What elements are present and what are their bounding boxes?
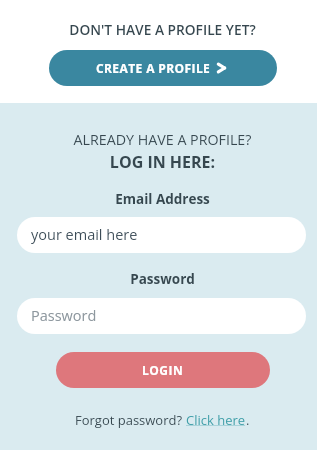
staticText: . [246, 411, 250, 429]
staticText: ALREADY HAVE A PROFILE? [4, 130, 317, 149]
button[interactable]: CREATE A PROFILE [49, 50, 277, 86]
staticText: Email Address [4, 190, 317, 208]
staticText: LOG IN HERE: [4, 151, 317, 173]
button[interactable]: Password [17, 298, 306, 334]
staticText: Password [31, 306, 97, 326]
staticText: Password [4, 270, 317, 288]
staticText: CREATE A PROFILE [96, 60, 211, 76]
button[interactable]: Click here [186, 411, 246, 429]
staticText: LOGIN [142, 362, 184, 378]
staticText: DON'T HAVE A PROFILE YET? [4, 20, 317, 39]
staticText: your email here [31, 225, 138, 245]
button[interactable]: Email Address [17, 217, 306, 253]
button[interactable]: LOGIN [56, 352, 270, 388]
staticText: Forgot password? [75, 411, 186, 429]
